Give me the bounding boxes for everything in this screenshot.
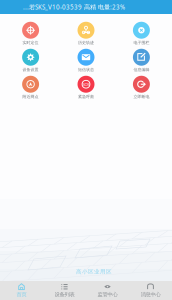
staticText: 首页 xyxy=(16,291,26,298)
staticText: 信息编辑 xyxy=(133,67,149,72)
staticText: 监管中心 xyxy=(97,291,117,298)
staticText: 高小区业用区 xyxy=(76,268,112,275)
staticText: 实时定位 xyxy=(23,40,39,45)
staticText: 历史轨迹 xyxy=(78,40,94,45)
staticText: 设备列表 xyxy=(54,291,74,298)
button[interactable]: 短信状态 xyxy=(58,47,114,74)
staticText: 设备设置 xyxy=(23,67,39,72)
button[interactable]: 电子围栏 xyxy=(114,20,169,47)
staticText: 立即断电 xyxy=(133,94,149,99)
button[interactable]: 立即断电 xyxy=(114,74,169,101)
staticText: 电子围栏 xyxy=(133,40,149,45)
button[interactable]: SOS xyxy=(58,74,114,101)
button[interactable]: 附近网点 xyxy=(3,74,58,101)
staticText: 消息中心 xyxy=(140,291,160,298)
button[interactable]: 设备设置 xyxy=(3,47,58,74)
staticText: SOS xyxy=(82,81,89,87)
staticText: 紧急呼救 xyxy=(78,94,94,99)
button[interactable]: 历史轨迹 xyxy=(58,20,114,47)
button[interactable]: 实时定位 xyxy=(3,20,58,47)
button[interactable]: 信息编辑 xyxy=(114,47,169,74)
staticText: ...若SKS_V10-03539 高精 电量:23% xyxy=(23,3,125,11)
button[interactable]: 消息中心 xyxy=(129,281,172,300)
staticText: 短信状态 xyxy=(78,67,94,72)
button[interactable]: 监管中心 xyxy=(86,281,129,300)
button[interactable]: 首页 xyxy=(0,281,43,300)
staticText: 附近网点 xyxy=(23,94,39,99)
button[interactable]: 设备列表 xyxy=(43,281,86,300)
